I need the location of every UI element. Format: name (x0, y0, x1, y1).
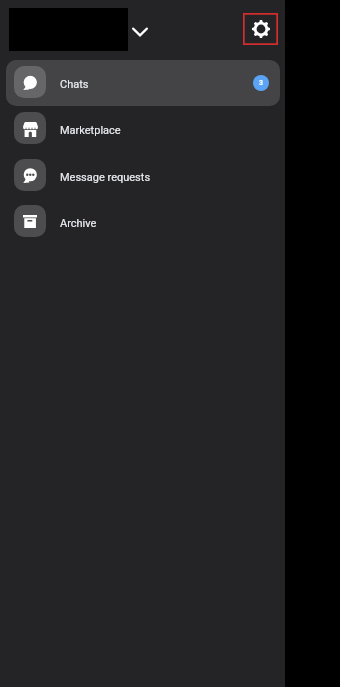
staticText: Archive (60, 217, 97, 230)
staticText: 3 (259, 79, 263, 87)
staticText: Marketplace (60, 124, 121, 137)
button[interactable]: Chats (6, 60, 280, 106)
button[interactable]: Settings (243, 13, 278, 45)
button[interactable]: Expand (132, 24, 148, 40)
staticText: Message requests (60, 171, 151, 184)
button[interactable]: Message requests (6, 153, 280, 199)
button[interactable]: Marketplace (6, 106, 280, 152)
staticText: Chats (60, 78, 89, 91)
button[interactable]: Archive (6, 199, 280, 245)
